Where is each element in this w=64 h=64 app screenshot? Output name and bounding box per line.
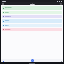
staticText: Reading (5, 16, 11, 17)
button[interactable]: Home (2, 60, 4, 62)
staticText: Wishlist (5, 29, 11, 30)
staticText: Travel (5, 20, 10, 22)
button[interactable]: Folders (60, 60, 62, 62)
staticText: Notes (30, 3, 35, 5)
button[interactable]: Search (60, 3, 62, 5)
button[interactable]: Work (2, 24, 62, 27)
button[interactable]: Travel (2, 19, 62, 23)
button[interactable]: Groceries (2, 6, 62, 10)
button[interactable]: Wishlist (2, 28, 62, 31)
button[interactable]: Ideas (2, 11, 62, 14)
staticText: Ideas (5, 12, 9, 13)
staticText: Groceries (5, 7, 12, 9)
staticText: Work (5, 25, 9, 26)
button[interactable]: Reading (2, 15, 62, 18)
button[interactable]: New note (31, 59, 34, 62)
